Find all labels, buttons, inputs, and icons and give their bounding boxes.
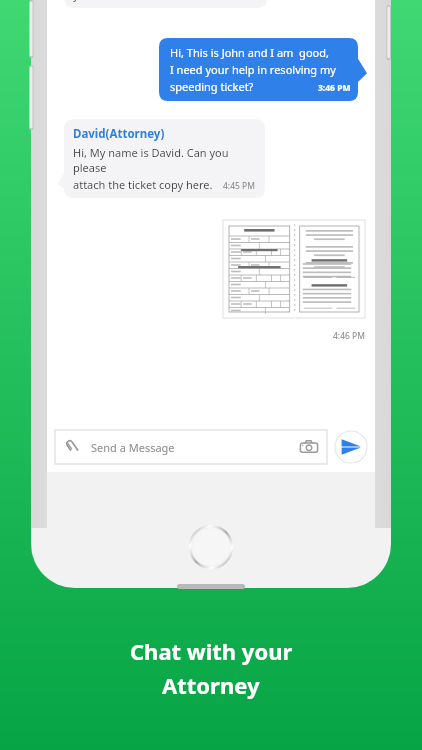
staticText: David(Attorney) — [73, 126, 165, 142]
button[interactable]: Attach file — [63, 438, 81, 456]
staticText: Hi, My name is David. Can you please — [73, 145, 255, 175]
other: Home — [189, 525, 233, 569]
staticText: Chat with your — [130, 636, 293, 666]
button[interactable]: David(Attorney) — [57, 119, 265, 198]
button[interactable]: Send — [333, 430, 369, 464]
button[interactable]: Hi, This is John and I am good, — [159, 38, 367, 101]
staticText: you? — [73, 0, 97, 2]
button[interactable]: Camera — [299, 437, 319, 457]
staticText: Hi, This is John and I am good, — [170, 45, 329, 60]
staticText: 4:45 PM — [223, 180, 255, 192]
staticText: Send a Message — [91, 440, 175, 455]
staticText: speeding ticket? — [170, 79, 254, 94]
button[interactable]: Stephanie(Paralegal) — [57, 0, 267, 8]
staticText: Attorney — [162, 670, 260, 700]
button[interactable]: Traffic ticket attachment — [223, 220, 365, 318]
staticText: 3:46 PM — [318, 82, 351, 94]
staticText: I need your help in resolving my — [170, 62, 336, 77]
staticText: attach the ticket copy here. — [73, 177, 213, 192]
staticText: 4:46 PM — [333, 330, 365, 342]
button[interactable]: Attach file — [55, 430, 327, 464]
